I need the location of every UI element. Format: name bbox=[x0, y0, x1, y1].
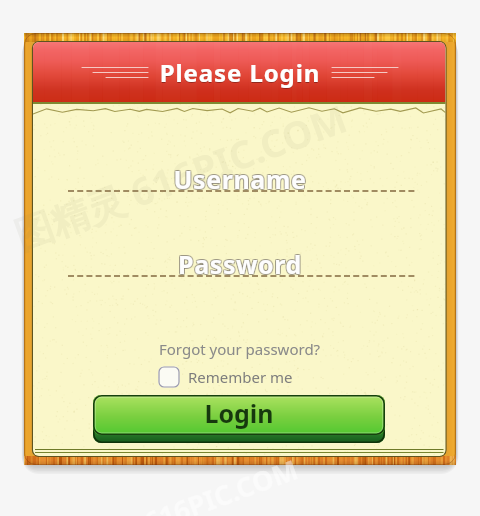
staticText: Username bbox=[0, 161, 480, 195]
staticText: Password bbox=[1, 247, 480, 281]
staticText: Password bbox=[0, 246, 479, 280]
staticText: Username bbox=[0, 162, 479, 196]
staticText: Password bbox=[1, 246, 480, 280]
staticText: Please Login bbox=[0, 57, 480, 90]
button[interactable]: Remember me checkbox bbox=[158, 366, 293, 388]
staticText: Username bbox=[1, 162, 480, 196]
staticText: Password bbox=[0, 248, 480, 282]
staticText: 图精灵 616PIC.COM bbox=[7, 91, 354, 260]
staticText: Password bbox=[0, 247, 480, 281]
staticText: Please Login bbox=[0, 56, 480, 89]
staticText: Login bbox=[93, 396, 385, 430]
staticText: Password bbox=[1, 248, 480, 282]
staticText: Username bbox=[0, 163, 480, 197]
staticText: 图精灵 616PIC.COM bbox=[56, 450, 303, 516]
staticText: Username bbox=[0, 161, 479, 195]
staticText: Username bbox=[0, 163, 479, 197]
staticText: Password bbox=[0, 246, 480, 280]
staticText: Username bbox=[1, 163, 480, 197]
button[interactable]: Forgot your password? bbox=[159, 339, 321, 359]
staticText: Password bbox=[0, 247, 479, 281]
button[interactable]: Login bbox=[93, 395, 385, 443]
staticText: Password bbox=[0, 248, 479, 282]
other: Remember me checkbox bbox=[158, 366, 180, 388]
staticText: Username bbox=[0, 162, 480, 196]
staticText: Remember me bbox=[188, 367, 293, 387]
staticText: Username bbox=[1, 161, 480, 195]
